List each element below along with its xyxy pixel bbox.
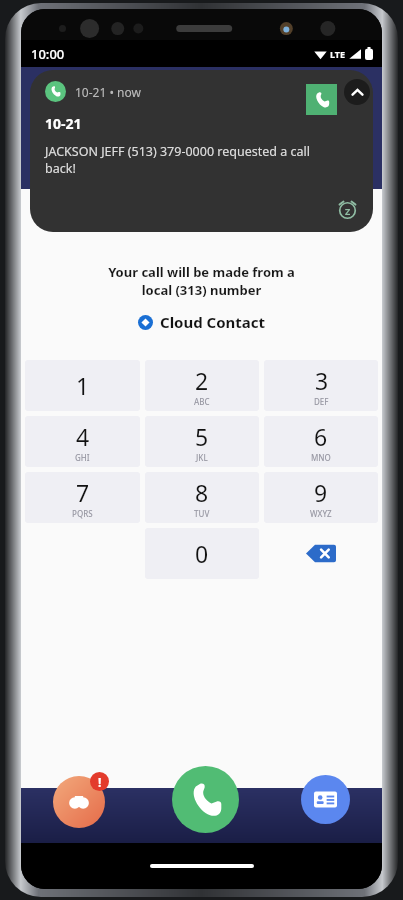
staticText: Your call will be made from a local (313… bbox=[21, 263, 382, 299]
staticText: GHI bbox=[75, 452, 90, 463]
staticText: 4 bbox=[76, 421, 90, 452]
staticText: 2 bbox=[195, 365, 209, 396]
button[interactable]: Contacts bbox=[301, 775, 350, 824]
staticText: 9 bbox=[314, 477, 328, 508]
staticText: 10:00 bbox=[31, 45, 65, 63]
staticText: 1 bbox=[76, 370, 90, 401]
staticText: JACKSON JEFF (513) 379-0000 requested a … bbox=[45, 143, 329, 177]
button[interactable]: Backspace bbox=[264, 528, 378, 579]
staticText: MNO bbox=[311, 452, 331, 463]
button[interactable]: 10-21 • now bbox=[30, 70, 373, 232]
staticText: 8 bbox=[195, 477, 209, 508]
button[interactable]: Call back bbox=[306, 84, 337, 115]
button[interactable]: Cloud Contact bbox=[21, 312, 382, 332]
button[interactable]: 9 bbox=[264, 472, 378, 523]
staticText: TUV bbox=[194, 508, 210, 519]
staticText: (313) 379-1900 bbox=[105, 197, 299, 235]
staticText: ! bbox=[98, 774, 102, 790]
button[interactable]: Call bbox=[172, 766, 239, 833]
button[interactable]: 2 bbox=[145, 360, 259, 411]
staticText: Z bbox=[345, 205, 351, 217]
button[interactable]: Voicemail bbox=[53, 772, 109, 828]
staticText: PQRS bbox=[72, 508, 93, 519]
button[interactable]: 7 bbox=[25, 472, 140, 523]
staticText: 10-21 • now bbox=[75, 84, 141, 100]
staticText: ABC bbox=[194, 396, 210, 407]
button[interactable]: 5 bbox=[145, 416, 259, 467]
staticText: Cloud Contact bbox=[160, 312, 266, 332]
staticText: 6 bbox=[314, 421, 328, 452]
button[interactable]: 0 bbox=[145, 528, 259, 579]
button[interactable]: Collapse bbox=[344, 79, 370, 105]
staticText: JKL bbox=[196, 452, 208, 463]
staticText: DEF bbox=[314, 396, 329, 407]
button[interactable]: 1 bbox=[25, 360, 140, 411]
staticText: 7 bbox=[76, 477, 90, 508]
staticText: 5 bbox=[195, 421, 209, 452]
staticText: 0 bbox=[195, 538, 209, 569]
staticText: 10-21 bbox=[45, 114, 82, 133]
button[interactable]: 8 bbox=[145, 472, 259, 523]
button[interactable]: 3 bbox=[264, 360, 378, 411]
staticText: WXYZ bbox=[310, 508, 332, 519]
staticText: 3 bbox=[315, 365, 329, 396]
button[interactable]: 4 bbox=[25, 416, 140, 467]
staticText: LTE bbox=[330, 48, 346, 60]
button[interactable]: Snooze bbox=[337, 200, 358, 221]
button[interactable]: 6 bbox=[264, 416, 378, 467]
